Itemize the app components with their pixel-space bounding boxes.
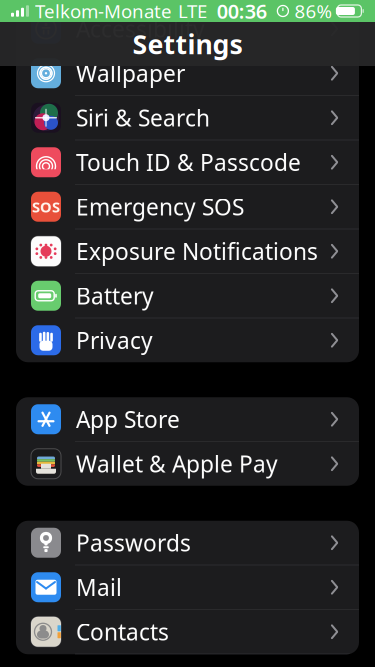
staticText: Battery	[76, 281, 154, 311]
staticText: Siri & Search	[76, 103, 210, 133]
button[interactable]: SOS	[16, 185, 359, 229]
staticText: Touch ID & Passcode	[76, 147, 301, 177]
staticText: App Store	[76, 404, 180, 434]
button[interactable]: Passwords	[16, 521, 359, 565]
staticText: Mail	[76, 572, 122, 602]
staticText: Telkom-Monate	[35, 0, 172, 23]
button[interactable]: Privacy	[16, 318, 359, 362]
button[interactable]: Wallet & Apple Pay	[16, 442, 359, 486]
button[interactable]: Accessibility	[16, 7, 359, 51]
staticText: SOS	[32, 197, 60, 216]
staticText: Emergency SOS	[76, 192, 244, 222]
button[interactable]: Battery	[16, 274, 359, 318]
button[interactable]: Mail	[16, 565, 359, 610]
button[interactable]: Touch ID & Passcode	[16, 140, 359, 185]
staticText: Passwords	[76, 528, 191, 558]
staticText: Contacts	[76, 617, 169, 647]
staticText: 86%	[294, 0, 332, 23]
staticText: LTE	[178, 0, 207, 23]
button[interactable]: Exposure Notifications	[16, 229, 359, 274]
button[interactable]: App Store	[16, 397, 359, 442]
button[interactable]: Wallpaper	[16, 51, 359, 96]
staticText: Settings	[132, 26, 242, 62]
staticText: 00:36	[217, 0, 267, 24]
staticText: Wallet & Apple Pay	[76, 449, 278, 479]
staticText: Wallpaper	[76, 58, 185, 88]
staticText: Exposure Notifications	[76, 236, 318, 266]
button[interactable]: Contacts	[16, 610, 359, 654]
staticText: Privacy	[76, 325, 153, 355]
button[interactable]: Siri & Search	[16, 96, 359, 140]
staticText: Accessibility	[76, 14, 205, 44]
